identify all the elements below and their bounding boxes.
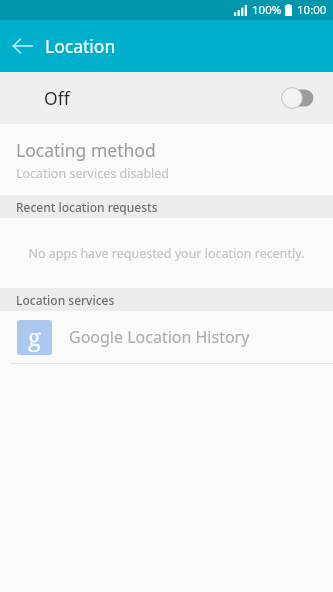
staticText: Location services: [16, 292, 115, 308]
staticText: g: [28, 320, 41, 352]
staticText: No apps have requested your location rec…: [28, 245, 305, 262]
staticText: Locating method: [16, 138, 156, 162]
staticText: Off: [44, 86, 70, 110]
button[interactable]: Back: [0, 24, 44, 68]
button[interactable]: g: [0, 311, 333, 363]
staticText: 10:00: [297, 2, 327, 18]
staticText: Location: [45, 34, 116, 58]
button[interactable]: Locating method: [0, 124, 333, 195]
button[interactable]: Off: [0, 72, 333, 124]
staticText: Recent location requests: [16, 199, 158, 215]
staticText: 100%: [252, 2, 282, 18]
staticText: Google Location History: [69, 326, 250, 348]
staticText: Location services disabled: [16, 165, 170, 182]
